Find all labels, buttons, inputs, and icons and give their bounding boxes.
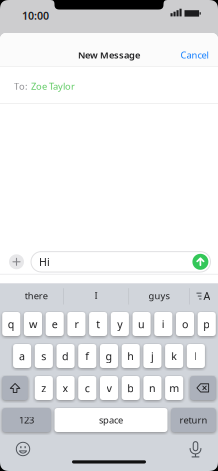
- button[interactable]: s: [35, 344, 53, 368]
- button[interactable]: k: [165, 344, 183, 368]
- button[interactable]: there: [0, 283, 63, 308]
- button[interactable]: c: [78, 376, 96, 400]
- staticText: k: [171, 349, 177, 363]
- staticText: c: [85, 381, 90, 395]
- staticText: Hi: [39, 255, 50, 269]
- staticText: f: [85, 349, 89, 363]
- staticText: space: [99, 414, 123, 426]
- staticText: x: [63, 381, 69, 395]
- staticText: t: [96, 317, 100, 331]
- button[interactable]: Send: [192, 254, 208, 270]
- button[interactable]: Cancel: [180, 49, 218, 61]
- staticText: I: [95, 290, 98, 302]
- staticText: b: [127, 381, 134, 395]
- staticText: d: [62, 349, 69, 363]
- button[interactable]: return: [171, 408, 216, 432]
- staticText: s: [41, 349, 46, 363]
- button[interactable]: f: [78, 344, 96, 368]
- button[interactable]: y: [111, 312, 129, 336]
- button[interactable]: h: [122, 344, 140, 368]
- staticText: To:: [14, 80, 28, 92]
- button[interactable]: w: [24, 312, 42, 336]
- staticText: q: [8, 317, 15, 331]
- button[interactable]: m: [165, 376, 183, 400]
- staticText: n: [149, 381, 156, 395]
- staticText: w: [29, 317, 37, 331]
- staticText: Zoe Taylor: [31, 80, 75, 92]
- button[interactable]: q: [2, 312, 20, 336]
- button[interactable]: e: [46, 312, 64, 336]
- button[interactable]: a: [13, 344, 31, 368]
- button[interactable]: l: [187, 344, 205, 368]
- button[interactable]: b: [122, 376, 140, 400]
- button[interactable]: I: [63, 283, 129, 308]
- staticText: there: [25, 290, 48, 302]
- staticText: u: [138, 317, 145, 331]
- staticText: v: [106, 381, 111, 395]
- button[interactable]: o: [176, 312, 194, 336]
- staticText: Cancel: [180, 49, 208, 61]
- button[interactable]: p: [198, 312, 216, 336]
- staticText: o: [182, 317, 188, 331]
- button[interactable]: i: [154, 312, 172, 336]
- button[interactable]: Emoji: [16, 442, 30, 456]
- button[interactable]: guys: [129, 283, 189, 308]
- staticText: e: [52, 317, 58, 331]
- button[interactable]: t: [89, 312, 107, 336]
- button[interactable]: n: [143, 376, 161, 400]
- button[interactable]: space: [54, 408, 167, 432]
- button[interactable]: Apps: [9, 254, 24, 269]
- staticText: h: [127, 349, 134, 363]
- staticText: 10:00: [22, 8, 49, 23]
- button[interactable]: To:: [0, 67, 218, 103]
- button[interactable]: Dictation: [189, 441, 201, 457]
- staticText: New Message: [78, 49, 140, 61]
- button[interactable]: z: [35, 376, 53, 400]
- staticText: p: [203, 317, 210, 331]
- button[interactable]: u: [132, 312, 151, 336]
- staticText: g: [105, 349, 112, 363]
- staticText: l: [194, 349, 197, 363]
- staticText: z: [41, 381, 46, 395]
- staticText: r: [74, 317, 78, 331]
- button[interactable]: r: [67, 312, 85, 336]
- staticText: y: [117, 317, 122, 331]
- staticText: i: [162, 317, 165, 331]
- staticText: a: [19, 349, 25, 363]
- button[interactable]: j: [143, 344, 161, 368]
- button[interactable]: x: [56, 376, 75, 400]
- staticText: j: [151, 349, 154, 363]
- staticText: A: [203, 289, 210, 303]
- button[interactable]: Numbers: [2, 408, 51, 432]
- staticText: 123: [19, 414, 34, 426]
- button[interactable]: d: [56, 344, 75, 368]
- button[interactable]: Shift: [2, 376, 28, 400]
- button[interactable]: Delete: [190, 376, 216, 400]
- button[interactable]: Predictive typing: [189, 283, 218, 308]
- staticText: return: [179, 414, 207, 426]
- button[interactable]: g: [100, 344, 118, 368]
- staticText: m: [169, 381, 179, 395]
- staticText: guys: [148, 290, 169, 302]
- button[interactable]: v: [100, 376, 118, 400]
